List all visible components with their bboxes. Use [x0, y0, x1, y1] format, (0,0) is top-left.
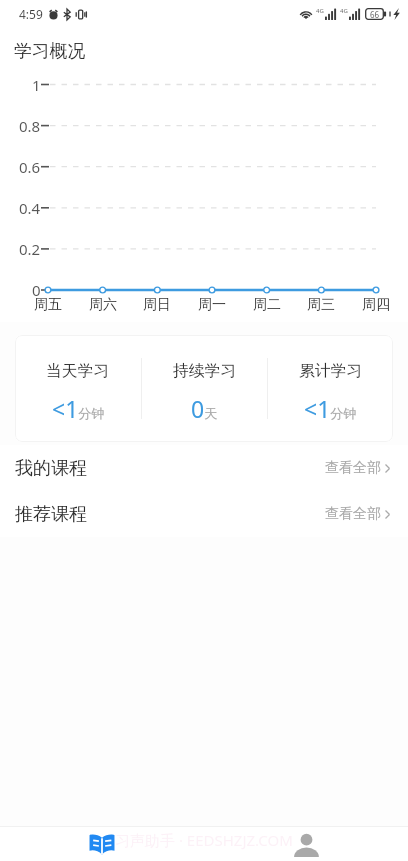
button[interactable]: 当天学习 [15, 335, 141, 442]
staticText: 周六 [89, 296, 117, 314]
button[interactable]: 课程 [0, 827, 204, 861]
staticText: 周五 [34, 296, 62, 314]
staticText: 当天学习 [46, 361, 110, 381]
staticText: 4G [340, 7, 348, 15]
staticText: 习声助手 · EEDSHZJZ.COM [115, 830, 293, 850]
staticText: 周四 [362, 296, 390, 314]
staticText: 0.6 [19, 157, 41, 177]
staticText: 0.2 [19, 239, 41, 259]
staticText: 查看全部 [325, 459, 381, 477]
staticText: <1分钟 [52, 393, 105, 424]
staticText: 0天 [191, 393, 218, 424]
staticText: 周一 [198, 296, 226, 314]
button[interactable]: 累计学习 [268, 335, 393, 442]
staticText: 累计学习 [299, 361, 363, 381]
staticText: 周二 [253, 296, 281, 314]
staticText: 推荐课程 [15, 503, 87, 526]
button[interactable]: 推荐课程 [0, 491, 408, 537]
staticText: 4G [316, 7, 324, 15]
staticText: 我的课程 [15, 457, 87, 480]
staticText: 查看全部 [325, 505, 381, 523]
button[interactable]: 持续学习 [142, 335, 267, 442]
button[interactable]: 我的课程 [0, 445, 408, 491]
staticText: 周日 [143, 296, 171, 314]
staticText: 0.4 [19, 198, 41, 218]
staticText: 周三 [307, 296, 335, 314]
staticText: 4:59 [19, 6, 43, 22]
staticText: 学习概况 [14, 40, 86, 62]
staticText: 0 [32, 280, 41, 300]
staticText: 66 [370, 9, 380, 20]
staticText: <1分钟 [304, 393, 357, 424]
staticText: 持续学习 [173, 361, 237, 381]
button[interactable]: 我的 [204, 827, 408, 861]
staticText: 1 [32, 75, 41, 95]
staticText: 0.8 [19, 116, 41, 136]
